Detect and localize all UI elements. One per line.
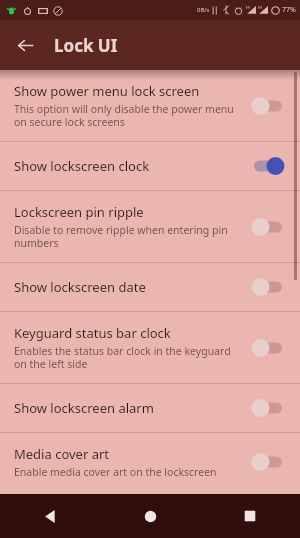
staticText: Enable media cover art on the lockscreen [14, 465, 217, 479]
button[interactable]: Back [0, 494, 100, 538]
button[interactable]: Show power menu lock screen [0, 70, 300, 141]
button[interactable]: Toggle off [248, 396, 288, 420]
button[interactable]: Back [4, 24, 46, 66]
staticText: Show lockscreen date [14, 278, 146, 296]
button[interactable]: Toggle off [248, 450, 288, 474]
button[interactable]: Lockscreen pin ripple [0, 191, 300, 262]
staticText: Lock UI [54, 34, 118, 57]
staticText: Show power menu lock screen [14, 82, 200, 100]
staticText: Media cover art [14, 445, 110, 463]
staticText: Disable to remove ripple when entering p… [14, 223, 240, 250]
button[interactable]: Toggle off [248, 336, 288, 360]
button[interactable]: Keyguard status bar clock [0, 312, 300, 383]
button[interactable]: Recents [200, 494, 300, 538]
button[interactable]: Toggle off [248, 275, 288, 299]
button[interactable]: Toggle off [248, 94, 288, 118]
staticText: Show lockscreen clock [14, 157, 150, 175]
staticText: 77% [282, 5, 296, 15]
staticText: This option will only disable the power … [14, 102, 240, 129]
staticText: Lockscreen pin ripple [14, 203, 144, 221]
button[interactable]: Show lockscreen alarm [0, 384, 300, 432]
staticText: 0B/s [197, 6, 210, 14]
button[interactable]: Home [100, 494, 200, 538]
button[interactable]: Media cover art [0, 433, 300, 491]
button[interactable]: Show lockscreen clock [0, 142, 300, 190]
button[interactable]: Show lockscreen date [0, 263, 300, 311]
staticText: Enables the status bar clock in the keyg… [14, 344, 240, 371]
button[interactable]: Toggle on [248, 154, 288, 178]
staticText: Keyguard status bar clock [14, 324, 171, 342]
button[interactable]: Toggle off [248, 215, 288, 239]
staticText: Show lockscreen alarm [14, 399, 154, 417]
